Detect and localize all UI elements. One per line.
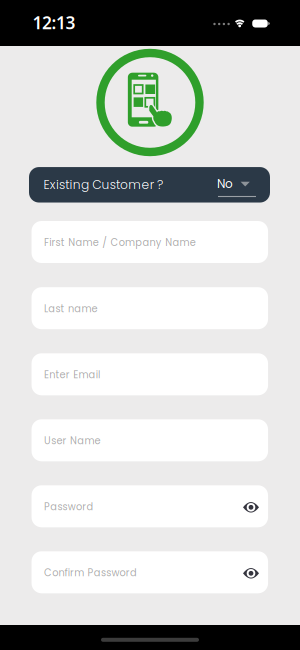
staticText: 12:13 (32, 11, 75, 34)
button[interactable]: Show password (236, 558, 266, 588)
staticText: First Name / Company Name (44, 236, 196, 249)
staticText: User Name (44, 434, 101, 448)
staticText: Last name (44, 302, 98, 315)
staticText: No (217, 175, 233, 192)
button[interactable]: Existing Customer ? (29, 167, 270, 203)
staticText: Confirm Password (44, 566, 137, 580)
staticText: Enter Email (44, 368, 100, 382)
staticText: Password (44, 500, 93, 514)
button[interactable]: Show password (236, 492, 266, 522)
staticText: Existing Customer ? (43, 176, 163, 193)
